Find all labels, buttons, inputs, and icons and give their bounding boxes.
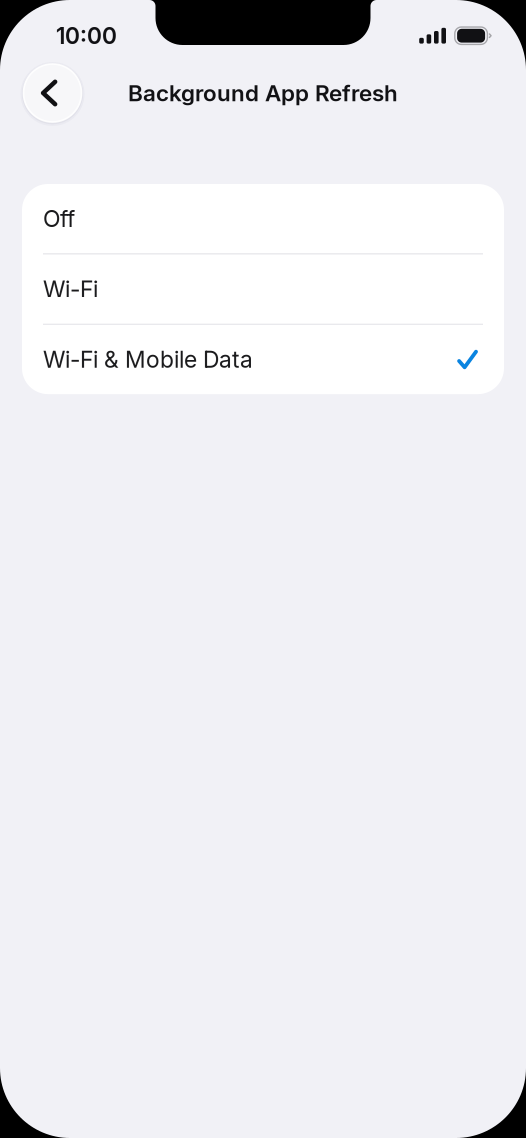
button[interactable]: Off [22,184,504,253]
button[interactable]: Back [25,64,83,122]
button[interactable]: Wi-Fi & Mobile Data [22,325,504,394]
button[interactable]: Wi-Fi [22,254,504,324]
staticText: Wi-Fi & Mobile Data [43,346,253,373]
staticText: Background App Refresh [128,79,398,107]
staticText: Off [43,205,75,232]
staticText: 10:00 [56,22,117,49]
staticText: Wi-Fi [43,275,98,303]
